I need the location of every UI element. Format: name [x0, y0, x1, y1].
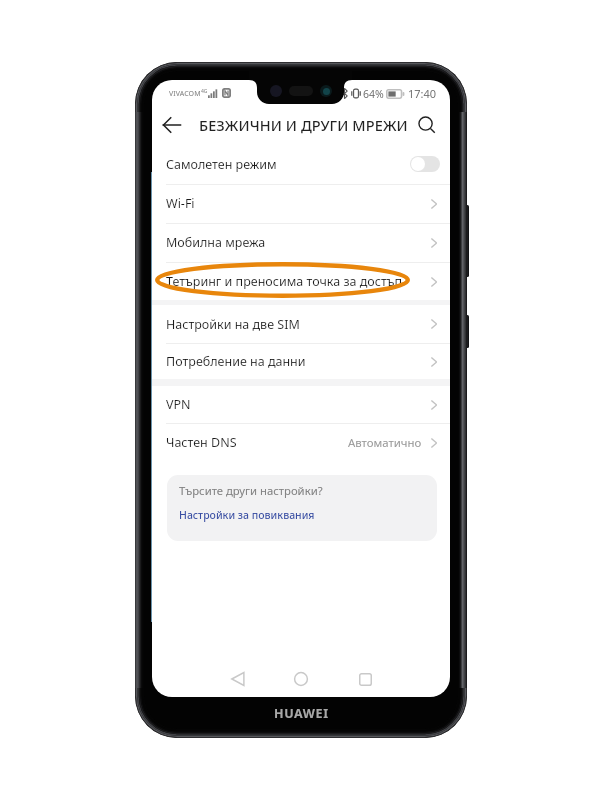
button[interactable]: Частен DNS	[152, 423, 450, 462]
button[interactable]: Back	[224, 665, 252, 693]
button[interactable]: Back	[158, 111, 186, 139]
button[interactable]: Search	[413, 111, 441, 139]
button[interactable]: Търсите други настройки?	[167, 475, 437, 541]
staticText: 4G	[201, 88, 208, 95]
staticText: БЕЗЖИЧНИ И ДРУГИ МРЕЖИ	[199, 115, 408, 135]
staticText: 64%	[363, 87, 384, 101]
staticText: Настройки на две SIM	[166, 316, 300, 333]
staticText: Автоматично	[348, 435, 422, 451]
staticText: Wi-Fi	[166, 195, 195, 212]
staticText: VPN	[166, 396, 191, 413]
staticText: Самолетен режим	[166, 156, 277, 173]
button[interactable]: Recents	[351, 665, 379, 693]
staticText: Потребление на данни	[166, 353, 306, 370]
button[interactable]: Wi-Fi	[152, 184, 450, 223]
button[interactable]: Мобилна мрежа	[152, 223, 450, 262]
button[interactable]: VPN	[152, 386, 450, 423]
staticText: 17:40	[408, 86, 437, 101]
staticText: Търсите други настройки?	[179, 483, 323, 498]
button[interactable]: Настройки на две SIM	[152, 305, 450, 343]
staticText: Мобилна мрежа	[166, 234, 266, 251]
staticText: Настройки за повиквания	[179, 508, 315, 522]
button[interactable]: Home	[287, 665, 315, 693]
staticText: Частен DNS	[166, 434, 237, 451]
staticText: Тетъринг и преносима точка за достъп	[166, 273, 403, 290]
button[interactable]: Потребление на данни	[152, 343, 450, 380]
staticText: VIVACOM	[169, 89, 201, 99]
button[interactable]: Самолетен режим	[152, 144, 450, 184]
button[interactable]: Тетъринг и преносима точка за достъп	[152, 262, 450, 301]
staticText: HUAWEI	[274, 705, 329, 722]
